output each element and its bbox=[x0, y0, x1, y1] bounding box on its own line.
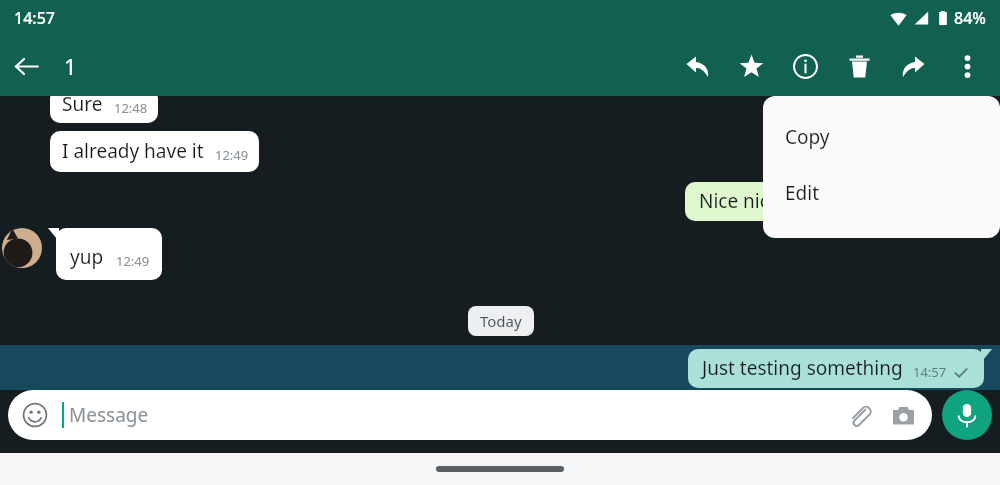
button[interactable]: Sure bbox=[50, 88, 158, 123]
staticText: Just testing something bbox=[702, 355, 903, 381]
staticText: yup bbox=[70, 244, 104, 270]
staticText: 12:48 bbox=[114, 99, 148, 117]
staticText: Nice nice bbox=[699, 188, 780, 214]
staticText: I already have it bbox=[62, 138, 204, 164]
button[interactable]: Reply bbox=[670, 39, 724, 93]
staticText: Copy bbox=[785, 124, 830, 150]
staticText: Sure bbox=[62, 91, 103, 117]
staticText: 12:49 bbox=[116, 252, 150, 270]
button[interactable]: Star bbox=[724, 39, 778, 93]
button[interactable]: Forward bbox=[886, 39, 940, 93]
button[interactable]: Camera bbox=[888, 400, 918, 430]
button[interactable]: Nice nice bbox=[685, 182, 794, 221]
button[interactable]: Attach bbox=[844, 400, 874, 430]
button[interactable]: Copy bbox=[763, 116, 1000, 158]
button[interactable]: Voice message bbox=[942, 390, 992, 440]
staticText: 84% bbox=[954, 7, 986, 29]
staticText: 14:57 bbox=[913, 363, 947, 381]
staticText: 14:57 bbox=[14, 7, 55, 29]
button[interactable]: Message bbox=[8, 390, 932, 440]
button[interactable]: Just testing something bbox=[0, 345, 1000, 391]
button[interactable]: Edit bbox=[763, 172, 1000, 214]
staticText: Today bbox=[480, 311, 522, 331]
button[interactable]: Info bbox=[778, 39, 832, 93]
staticText: 1 bbox=[64, 51, 77, 81]
button[interactable]: Just testing something bbox=[688, 349, 992, 388]
staticText: Message bbox=[69, 402, 149, 428]
button[interactable]: Delete bbox=[832, 39, 886, 93]
button[interactable]: yup bbox=[48, 228, 162, 280]
staticText: 12:49 bbox=[215, 146, 249, 164]
button[interactable]: I already have it bbox=[50, 131, 259, 172]
button[interactable]: Back bbox=[0, 40, 52, 92]
button[interactable]: More options bbox=[940, 39, 994, 93]
staticText: Edit bbox=[785, 180, 820, 206]
